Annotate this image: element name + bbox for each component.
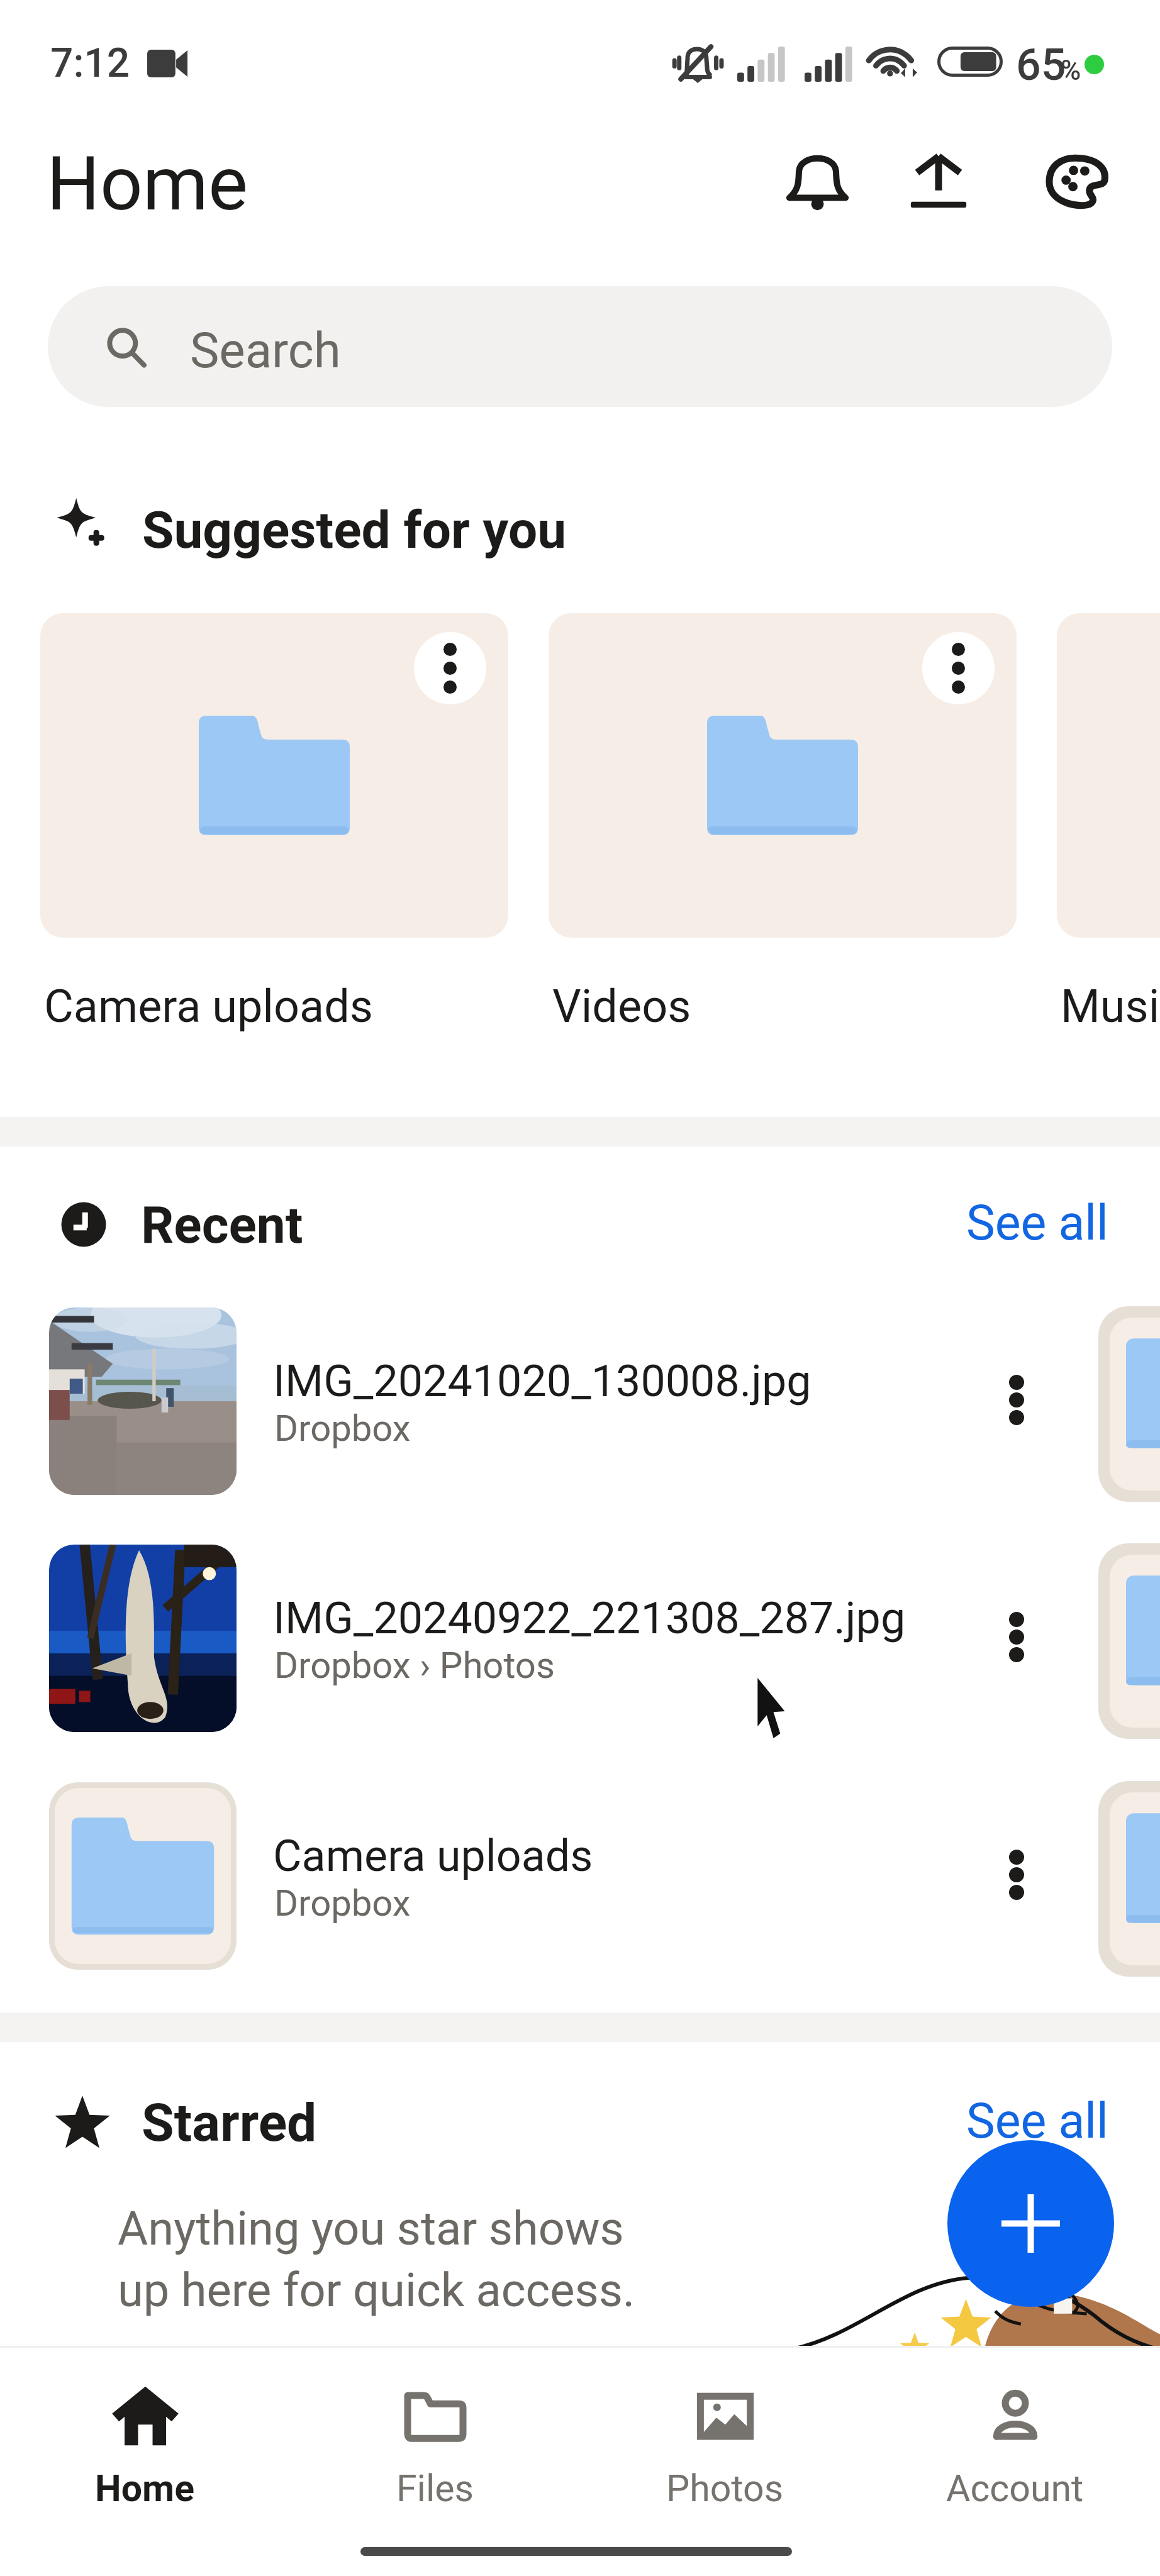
staticText: Suggested for you bbox=[142, 500, 567, 560]
staticText: Camera uploads bbox=[273, 1830, 978, 1882]
button[interactable]: Upload bbox=[894, 137, 983, 226]
button[interactable]: More options bbox=[988, 1346, 1046, 1453]
staticText: Dropbox bbox=[274, 1407, 966, 1450]
staticText: Home bbox=[95, 2467, 195, 2510]
button[interactable] bbox=[0, 1757, 1160, 1995]
staticText: IMG_20240922_221308_287.jpg bbox=[273, 1592, 978, 1644]
button[interactable]: More options bbox=[988, 1584, 1046, 1690]
button[interactable]: Create new bbox=[947, 2140, 1114, 2307]
button[interactable]: More options bbox=[40, 613, 508, 1033]
staticText: See all bbox=[966, 1195, 1108, 1252]
staticText: % bbox=[1061, 54, 1081, 87]
staticText: Videos bbox=[552, 980, 1020, 1033]
button[interactable]: Search bbox=[48, 286, 1112, 407]
staticText: See all bbox=[966, 2093, 1108, 2150]
staticText: IMG_20241020_130008.jpg bbox=[273, 1355, 978, 1407]
staticText: Account bbox=[946, 2467, 1084, 2510]
button[interactable]: Home bbox=[0, 2348, 290, 2537]
staticText: Dropbox › Photos bbox=[274, 1644, 966, 1687]
staticText: Files bbox=[396, 2467, 474, 2510]
staticText: Photos bbox=[666, 2467, 784, 2510]
staticText: 65 bbox=[1016, 39, 1066, 91]
button[interactable] bbox=[0, 1519, 1160, 1757]
button[interactable]: More options bbox=[414, 632, 486, 704]
button[interactable]: Photos bbox=[580, 2348, 870, 2537]
button[interactable]: Files bbox=[290, 2348, 580, 2537]
button[interactable] bbox=[0, 1282, 1160, 1520]
button[interactable]: Account bbox=[870, 2348, 1160, 2537]
button[interactable]: More options bbox=[1057, 613, 1160, 1033]
staticText: Search bbox=[190, 322, 341, 379]
staticText: Music bbox=[1061, 980, 1160, 1033]
button[interactable]: See all bbox=[956, 1189, 1118, 1258]
staticText: 7:12 bbox=[50, 40, 130, 87]
button[interactable]: More options bbox=[922, 632, 995, 704]
button[interactable]: Theme bbox=[1032, 137, 1122, 226]
button[interactable]: More options bbox=[988, 1821, 1046, 1928]
button[interactable]: Notifications bbox=[772, 137, 862, 226]
button[interactable]: See all bbox=[956, 2087, 1118, 2156]
staticText: Camera uploads bbox=[44, 980, 512, 1033]
staticText: Dropbox bbox=[274, 1882, 966, 1924]
staticText: Recent bbox=[141, 1195, 303, 1255]
button[interactable]: More options bbox=[549, 613, 1017, 1033]
staticText: Anything you star shows up here for quic… bbox=[118, 2201, 635, 2318]
staticText: Home bbox=[47, 140, 248, 228]
staticText: Starred bbox=[142, 2092, 317, 2153]
